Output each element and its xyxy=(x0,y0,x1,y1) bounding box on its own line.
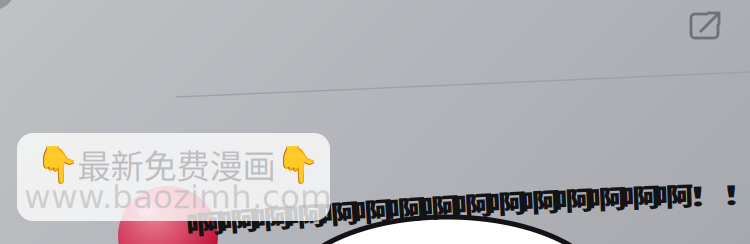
staticText: 啊 xyxy=(218,191,258,244)
staticText: 啊 xyxy=(252,188,292,244)
staticText: ！ xyxy=(721,164,750,222)
staticText: 最新免费漫画 xyxy=(77,140,275,188)
staticText: ！ xyxy=(687,165,727,223)
staticText: 啊 xyxy=(654,166,694,224)
staticText: 啊 xyxy=(285,186,325,244)
staticText: 啊 xyxy=(486,174,526,231)
staticText: 啊 xyxy=(553,170,593,228)
staticText: 啊 xyxy=(352,181,392,239)
staticText: 啊 xyxy=(386,179,426,237)
staticText: www.baozimh.com xyxy=(24,178,332,216)
staticText: 啊 xyxy=(319,184,359,242)
staticText: 👇 xyxy=(35,144,80,186)
staticText: 啊 xyxy=(620,168,660,225)
staticText: 啊 xyxy=(520,172,560,230)
staticText: 啊 xyxy=(419,177,459,235)
staticText: 啊 xyxy=(587,169,627,227)
button[interactable]: 👇 xyxy=(17,133,330,221)
staticText: 👇 xyxy=(275,144,320,186)
button[interactable]: Open in new window xyxy=(682,7,728,53)
staticText: 啊 xyxy=(453,175,493,233)
staticText: 啊 xyxy=(185,194,225,244)
